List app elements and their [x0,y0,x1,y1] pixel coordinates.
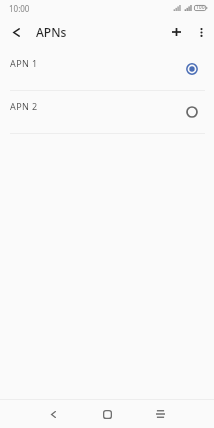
button[interactable]: Navigate up [2,18,30,46]
staticText: 100 [196,4,205,11]
button[interactable]: Back [39,400,67,428]
button[interactable]: APN 1 [0,48,214,90]
button[interactable]: Add APN [162,18,190,46]
button[interactable]: More options [187,18,214,46]
staticText: 10:00 [9,3,30,14]
staticText: APN 1 [10,57,38,69]
button[interactable]: APN 2 [0,91,214,133]
staticText: APN 2 [10,100,38,112]
staticText: APNs [36,24,67,40]
button[interactable]: Recent apps [146,400,174,428]
button[interactable]: Home [93,400,121,428]
